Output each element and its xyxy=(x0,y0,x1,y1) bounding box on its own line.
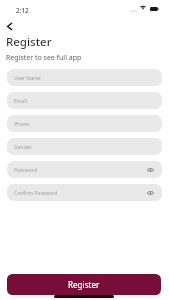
staticText: Register to see full app xyxy=(6,53,82,63)
button[interactable]: Register xyxy=(7,274,161,295)
staticText: Register xyxy=(68,279,100,290)
staticText: 2:12 xyxy=(16,6,29,15)
button[interactable]: Back xyxy=(1,18,18,35)
staticText: Confirm Password xyxy=(14,190,58,197)
staticText: Phone xyxy=(14,121,30,128)
staticText: User Name xyxy=(14,75,41,82)
button[interactable]: Phone xyxy=(7,115,162,132)
button[interactable]: Gender xyxy=(7,138,162,155)
staticText: Gender xyxy=(14,144,32,151)
button[interactable]: User Name xyxy=(7,69,162,86)
staticText: Register xyxy=(6,34,52,50)
button[interactable]: Email xyxy=(7,92,162,109)
staticText: Password xyxy=(14,167,37,174)
button[interactable]: Show password xyxy=(147,189,154,196)
staticText: Email xyxy=(14,98,27,105)
button[interactable]: Password xyxy=(7,161,162,178)
button[interactable]: Show password xyxy=(147,166,154,173)
button[interactable]: Confirm Password xyxy=(7,184,162,201)
